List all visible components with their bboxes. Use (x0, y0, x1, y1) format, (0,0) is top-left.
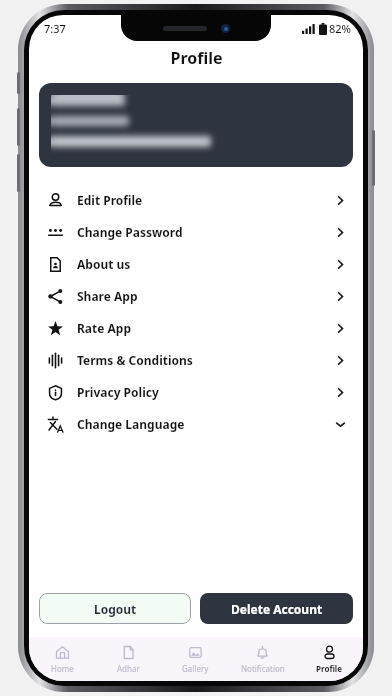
staticText: About us (77, 256, 131, 272)
staticText: Gallery (182, 663, 209, 674)
button[interactable]: Profile (296, 637, 363, 681)
button[interactable]: Rate App (29, 312, 363, 344)
staticText: Privacy Policy (77, 384, 159, 400)
staticText: Notification (241, 663, 285, 674)
button[interactable]: Adhar (95, 637, 162, 681)
button[interactable]: Change Language (29, 408, 363, 440)
staticText: Adhar (117, 663, 140, 674)
button[interactable]: Share App (29, 280, 363, 312)
staticText: Profile (316, 663, 343, 674)
staticText: Logout (94, 601, 137, 617)
staticText: Rate App (77, 320, 132, 336)
button[interactable]: Edit Profile (29, 184, 363, 216)
staticText: Terms & Conditions (77, 352, 193, 368)
staticText: 82% (329, 21, 351, 36)
staticText: 7:37 (44, 21, 66, 36)
button[interactable]: Terms & Conditions (29, 344, 363, 376)
staticText: Edit Profile (77, 192, 143, 208)
button[interactable]: Change Password (29, 216, 363, 248)
button[interactable]: Home (29, 637, 95, 681)
staticText: Change Language (77, 416, 185, 432)
staticText: Profile (170, 47, 223, 69)
button[interactable]: Logout (39, 593, 191, 624)
button[interactable]: About us (29, 248, 363, 280)
button[interactable]: Notification (229, 637, 296, 681)
staticText: Home (51, 663, 74, 674)
button[interactable]: Privacy Policy (29, 376, 363, 408)
button[interactable]: Gallery (162, 637, 229, 681)
staticText: Change Password (77, 224, 183, 240)
staticText: Share App (77, 288, 138, 304)
button[interactable]: Delete Account (200, 593, 353, 624)
button[interactable] (39, 83, 353, 167)
staticText: Delete Account (231, 601, 323, 617)
